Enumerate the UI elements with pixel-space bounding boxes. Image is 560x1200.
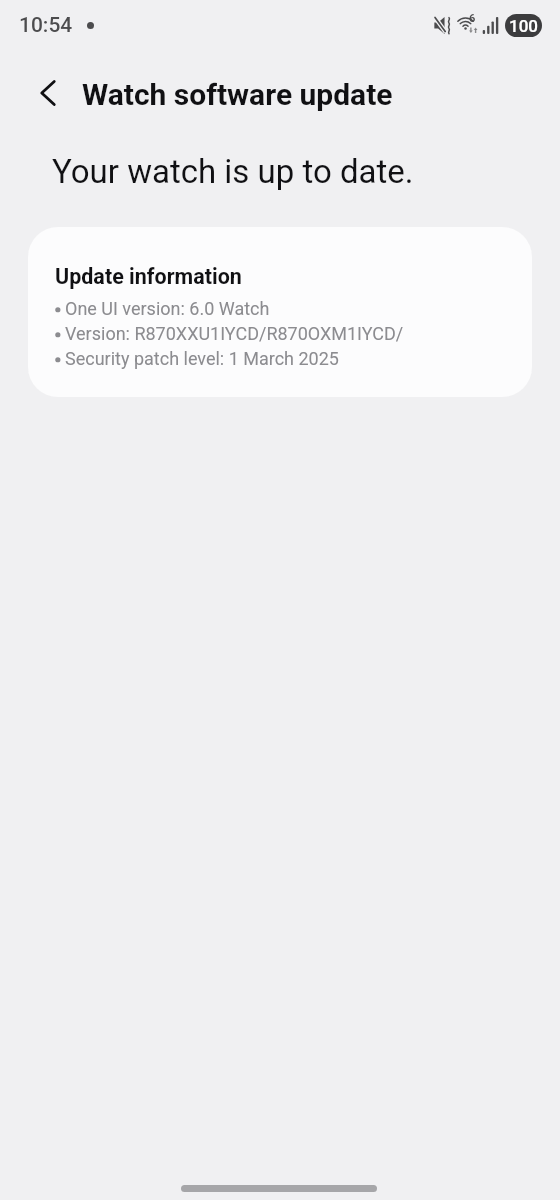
- staticText: Your watch is up to date.: [52, 152, 414, 191]
- staticText: 100: [509, 16, 538, 36]
- staticText: 10:54: [19, 13, 73, 38]
- button[interactable]: Navigate up: [24, 69, 72, 117]
- staticText: Watch software update: [82, 77, 393, 112]
- staticText: One UI version: 6.0 Watch: [65, 298, 270, 319]
- staticText: Update information: [55, 264, 242, 289]
- staticText: 6: [469, 12, 476, 25]
- staticText: Security patch level: 1 March 2025: [65, 348, 339, 369]
- staticText: Version: R870XXU1IYCD/R870OXM1IYCD/: [65, 323, 404, 344]
